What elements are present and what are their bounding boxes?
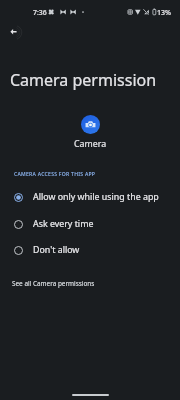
button[interactable]: Don't allow xyxy=(0,237,180,263)
staticText: CAMERA ACCESS FOR THIS APP xyxy=(14,171,96,178)
staticText: 13% xyxy=(157,8,171,18)
staticText: See all Camera permissions xyxy=(12,279,95,288)
button[interactable]: Back xyxy=(2,20,26,44)
button[interactable]: Allow only while using the app xyxy=(0,184,180,210)
staticText: Don't allow xyxy=(33,244,80,256)
staticText: Allow only while using the app xyxy=(33,191,159,203)
button[interactable]: Ask every time xyxy=(0,211,180,237)
staticText: Ask every time xyxy=(33,218,94,230)
staticText: Camera permission xyxy=(10,69,157,91)
staticText: Camera xyxy=(74,138,107,150)
staticText: 7:36 xyxy=(33,8,47,17)
button[interactable]: See all Camera permissions xyxy=(6,274,101,293)
